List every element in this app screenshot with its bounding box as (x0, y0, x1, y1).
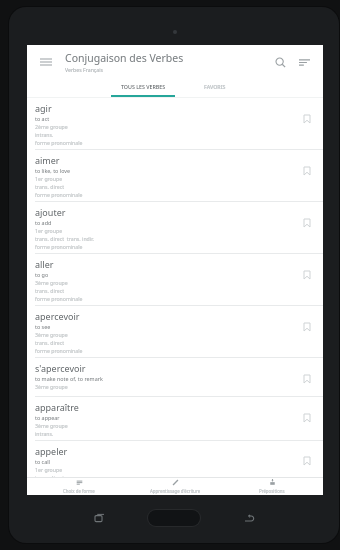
button[interactable]: apercevoir (27, 306, 323, 358)
button[interactable]: FAVORIS (193, 78, 237, 95)
staticText: 1er groupe (35, 175, 63, 182)
staticText: trans. direct (35, 287, 65, 294)
staticText: trans. direct (35, 183, 65, 190)
staticText: trans. direct trans. indir. (35, 235, 94, 242)
button[interactable]: aller (27, 254, 323, 306)
button[interactable]: Prépositions (227, 478, 317, 495)
staticText: agir (35, 102, 52, 114)
staticText: Prépositions (259, 488, 285, 494)
staticText: to make note of, to remark (35, 375, 103, 382)
staticText: to call (35, 458, 51, 465)
staticText: intrans. (35, 131, 54, 138)
staticText: aimer (35, 154, 60, 166)
staticText: to see (35, 323, 51, 330)
staticText: Verbes Français (65, 66, 104, 73)
staticText: forme pronominale (35, 139, 83, 146)
staticText: appeler (35, 445, 68, 457)
staticText: Apprentissage d'écriture (150, 488, 201, 494)
button[interactable]: s'apercevoir (27, 358, 323, 397)
button[interactable]: aimer (27, 150, 323, 202)
staticText: apparaître (35, 401, 79, 413)
staticText: apercevoir (35, 310, 80, 322)
button[interactable]: apparaître (27, 397, 323, 441)
button[interactable]: Add aller to favourites (297, 258, 317, 292)
staticText: TOUS LES VERBES (121, 83, 166, 90)
button[interactable]: Sort (293, 51, 315, 73)
button[interactable]: Add s'apercevoir to favourites (297, 362, 317, 396)
button[interactable]: appeler (27, 441, 323, 477)
button[interactable]: Add ajouter to favourites (297, 206, 317, 240)
staticText: 1er groupe (35, 227, 63, 234)
button[interactable]: Add aimer to favourites (297, 154, 317, 188)
staticText: 2ème groupe (35, 123, 68, 130)
button[interactable]: Open navigation menu (35, 51, 57, 73)
button[interactable]: Add appeler to favourites (297, 445, 317, 477)
button[interactable]: Home (147, 509, 201, 527)
staticText: to go (35, 271, 49, 278)
staticText: Choix de forme (63, 488, 95, 494)
staticText: 1er groupe (35, 466, 63, 473)
staticText: forme pronominale (35, 191, 83, 198)
staticText: intrans. (35, 430, 54, 437)
staticText: 3ème groupe (35, 279, 68, 286)
staticText: trans. direct (35, 474, 65, 477)
staticText: forme pronominale (35, 347, 83, 354)
button[interactable]: Add apercevoir to favourites (297, 310, 317, 344)
button[interactable]: Add apparaître to favourites (297, 401, 317, 435)
button[interactable]: Back (201, 501, 297, 535)
staticText: 3ème groupe (35, 331, 68, 338)
staticText: 3ème groupe (35, 383, 68, 390)
staticText: to like, to love (35, 167, 71, 174)
staticText: Conjugaison des Verbes (65, 51, 184, 65)
staticText: to appear (35, 414, 60, 421)
button[interactable]: agir (27, 98, 323, 150)
button[interactable]: ajouter (27, 202, 323, 254)
button[interactable]: TOUS LES VERBES (111, 78, 175, 95)
staticText: s'apercevoir (35, 362, 86, 374)
staticText: trans. direct (35, 339, 65, 346)
button[interactable]: Search (269, 51, 291, 73)
staticText: forme pronominale (35, 295, 83, 302)
button[interactable]: Choix de forme (34, 478, 124, 495)
button[interactable]: Recent apps (51, 501, 147, 535)
staticText: 3ème groupe (35, 422, 68, 429)
staticText: ajouter (35, 206, 66, 218)
staticText: to act (35, 115, 50, 122)
button[interactable]: Add agir to favourites (297, 102, 317, 136)
staticText: aller (35, 258, 54, 270)
button[interactable]: Apprentissage d'écriture (130, 478, 220, 495)
staticText: FAVORIS (204, 83, 226, 90)
staticText: forme pronominale (35, 243, 83, 250)
staticText: to add (35, 219, 52, 226)
